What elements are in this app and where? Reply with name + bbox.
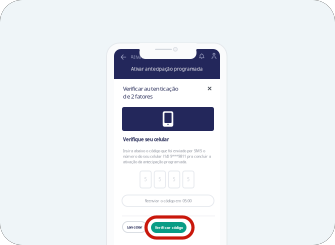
staticText: 5 xyxy=(158,176,161,183)
staticText: Ativar antecipação programa xyxy=(130,54,156,60)
staticText: Insira abaixo o código que foi enviado p… xyxy=(123,148,211,164)
staticText: Verificar autenticação de 2 fatores xyxy=(123,84,178,100)
staticText: 5 xyxy=(187,176,190,183)
staticText: Verificar código xyxy=(155,225,183,230)
staticText: Ativar antecipação programada xyxy=(131,66,203,72)
staticText: 5 xyxy=(144,176,147,183)
staticText: Cancelar xyxy=(126,224,142,230)
staticText: 5 xyxy=(173,176,176,183)
staticText: Reenviar o código em 05:00 xyxy=(144,198,191,203)
staticText: Verifique seu celular xyxy=(123,136,169,143)
